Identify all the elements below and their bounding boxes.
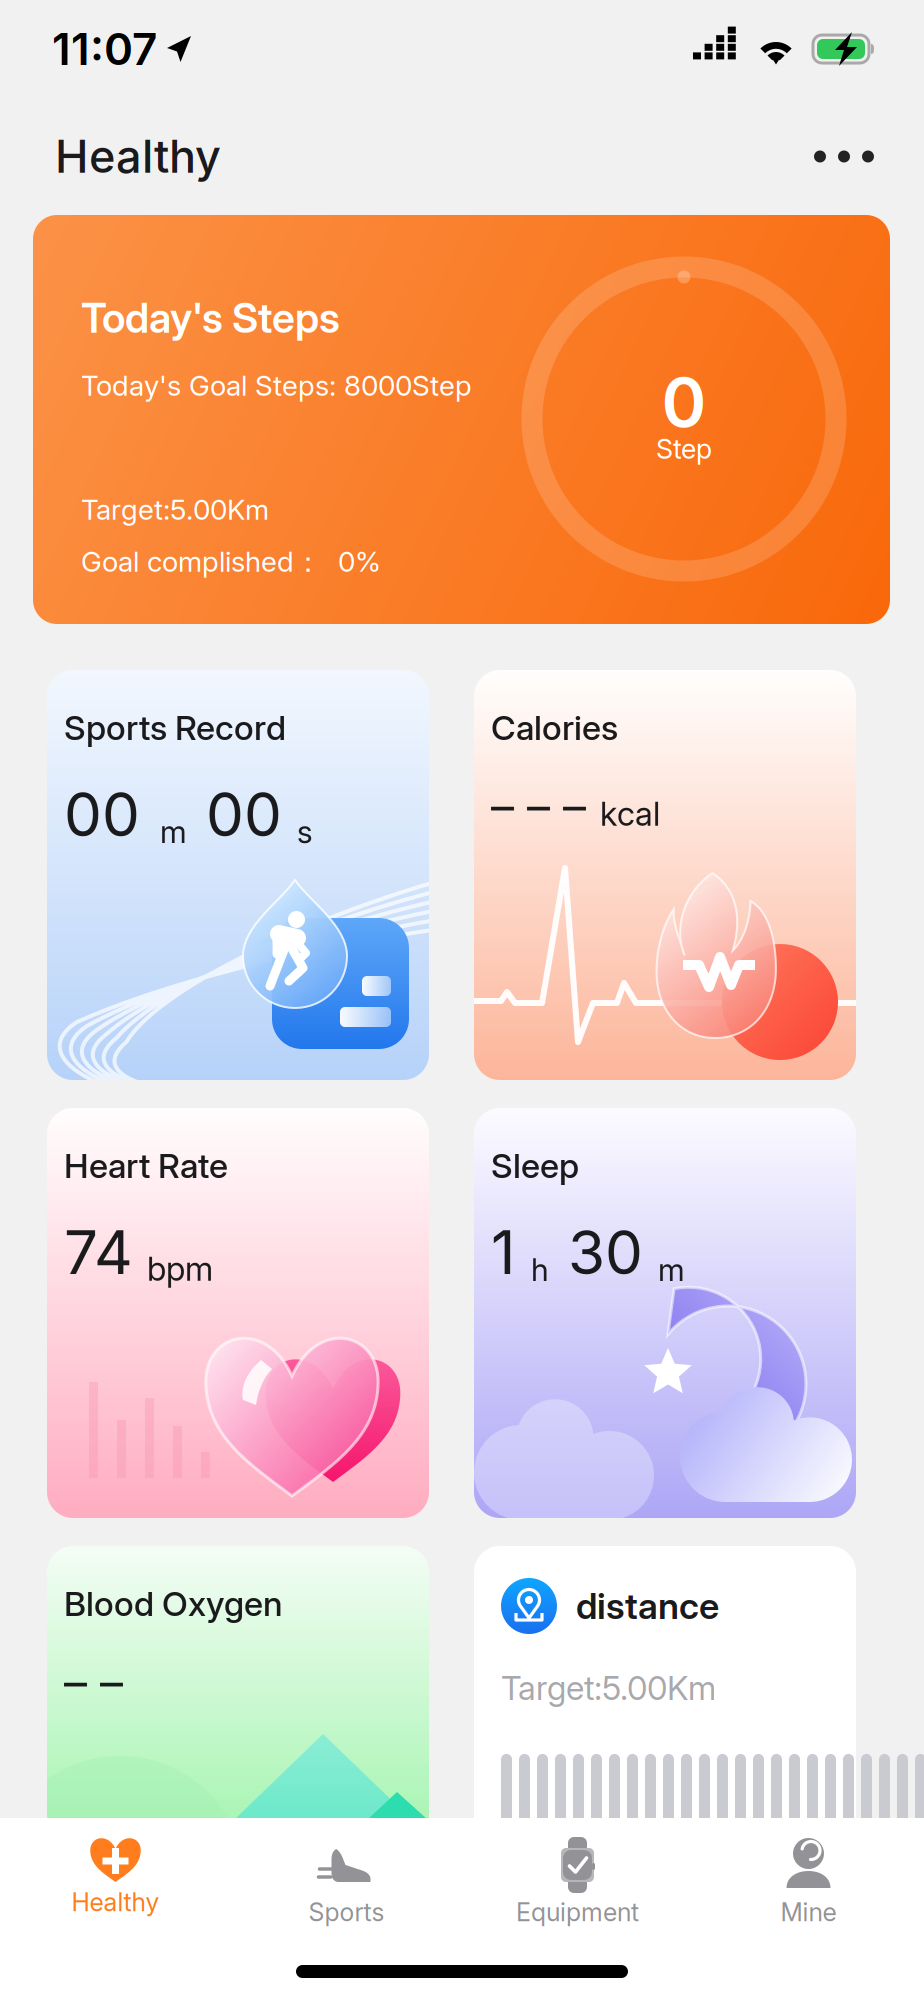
staticText: distance [576, 1584, 719, 1628]
staticText: – – [64, 1654, 123, 1710]
staticText: Step [656, 433, 712, 465]
staticText: 00 [206, 778, 282, 851]
staticText: kcal [600, 794, 660, 834]
staticText: 0 [661, 361, 706, 443]
staticText: 30 [568, 1216, 643, 1289]
staticText: Today's Goal Steps: 8000Step [81, 369, 472, 402]
button[interactable]: 0 [33, 215, 890, 624]
button[interactable]: Sleep [474, 1108, 856, 1518]
staticText: Today's Steps [81, 293, 340, 343]
staticText: Target:5.00Km [501, 1668, 716, 1708]
button[interactable]: Heart Rate [47, 1108, 429, 1518]
staticText: 1 [491, 1216, 515, 1289]
button[interactable]: Sports Record [47, 670, 429, 1080]
staticText: 74 [64, 1216, 133, 1289]
staticText: Sports Record [64, 707, 286, 748]
staticText: Sleep [491, 1145, 579, 1186]
staticText: 00 [64, 778, 140, 851]
staticText: Blood Oxygen [64, 1583, 283, 1624]
staticText: Goal complished： 0% [81, 545, 381, 580]
button[interactable]: More options [788, 117, 900, 195]
staticText: Calories [491, 707, 618, 748]
staticText: s [297, 813, 313, 851]
staticText: h [531, 1251, 549, 1289]
staticText: Target:5.00Km [81, 493, 269, 527]
button[interactable]: Healthy [0, 1818, 231, 1950]
staticText: 11:07 [52, 22, 157, 76]
staticText: – – – [491, 778, 586, 834]
button[interactable]: Mine [693, 1818, 924, 1950]
staticText: m [658, 1251, 685, 1289]
staticText: Equipment [516, 1897, 639, 1927]
staticText: Healthy [71, 1887, 159, 1917]
staticText: Sports [308, 1897, 384, 1927]
staticText: m [160, 813, 187, 851]
button[interactable]: Equipment [462, 1818, 693, 1950]
button[interactable]: Blood Oxygen [47, 1546, 429, 1846]
button[interactable]: Sports [231, 1818, 462, 1950]
button[interactable]: Calories [474, 670, 856, 1080]
staticText: Healthy [55, 129, 221, 184]
staticText: Heart Rate [64, 1145, 228, 1186]
staticText: Mine [780, 1897, 836, 1927]
staticText: bpm [147, 1249, 213, 1289]
button[interactable]: distance [474, 1546, 856, 1846]
